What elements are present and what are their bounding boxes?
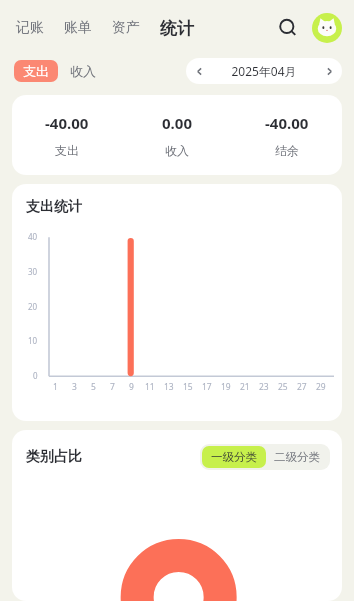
staticText: 23 [259, 381, 269, 393]
staticText: 收入 [165, 143, 189, 158]
staticText: 10 [28, 335, 38, 346]
staticText: 17 [202, 381, 212, 393]
button[interactable]: 账单 [62, 15, 94, 41]
button[interactable]: 二级分类 [266, 446, 328, 468]
button[interactable]: Search [272, 12, 304, 44]
button[interactable]: 统计 [158, 14, 196, 43]
staticText: 统计 [160, 18, 194, 39]
staticText: 15 [183, 381, 193, 393]
button[interactable]: -40.00 [12, 95, 342, 175]
staticText: 类别占比 [26, 448, 82, 466]
button[interactable]: Profile [312, 13, 342, 43]
staticText: 0.00 [162, 113, 192, 133]
staticText: 5 [91, 381, 96, 393]
button[interactable]: 一级分类 [202, 446, 266, 468]
staticText: 资产 [112, 19, 140, 37]
staticText: 2025年04月 [212, 63, 316, 79]
staticText: 3 [72, 381, 77, 393]
staticText: 0 [33, 370, 38, 381]
staticText: -40.00 [265, 113, 309, 133]
staticText: 记账 [16, 19, 44, 37]
staticText: 支出 [23, 63, 49, 79]
staticText: 9 [129, 381, 134, 393]
button[interactable]: 支出 [14, 60, 58, 82]
staticText: 29 [316, 381, 326, 393]
staticText: 30 [28, 266, 38, 277]
staticText: 19 [221, 381, 231, 393]
staticText: 一级分类 [211, 450, 257, 464]
staticText: 11 [145, 381, 155, 393]
button[interactable]: 资产 [110, 15, 142, 41]
staticText: 21 [240, 381, 250, 393]
staticText: 40 [28, 231, 38, 242]
staticText: 25 [278, 381, 288, 393]
button[interactable]: 支出统计 [12, 184, 342, 421]
button[interactable]: 记账 [14, 15, 46, 41]
button[interactable]: 类别占比 [12, 430, 342, 601]
button[interactable]: Next month [316, 58, 342, 84]
staticText: 20 [28, 301, 38, 312]
staticText: 支出 [55, 143, 79, 158]
button[interactable]: Previous month [186, 58, 212, 84]
staticText: 7 [110, 381, 115, 393]
staticText: 1 [53, 381, 58, 393]
button[interactable]: 收入 [66, 60, 100, 82]
staticText: 收入 [70, 63, 96, 79]
staticText: 支出统计 [26, 198, 82, 216]
staticText: 27 [297, 381, 307, 393]
staticText: -40.00 [45, 113, 89, 133]
button[interactable]: Previous month [186, 58, 342, 84]
staticText: 13 [164, 381, 174, 393]
staticText: 账单 [64, 19, 92, 37]
staticText: 结余 [275, 143, 299, 158]
staticText: 二级分类 [274, 450, 320, 464]
